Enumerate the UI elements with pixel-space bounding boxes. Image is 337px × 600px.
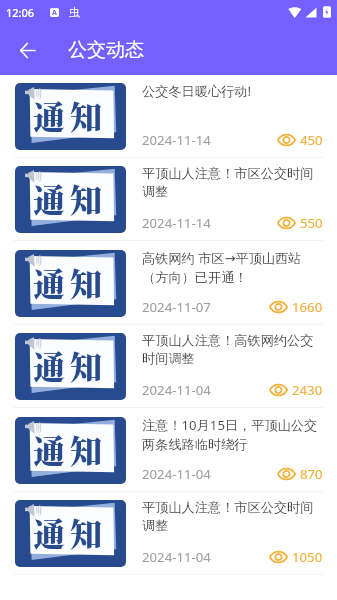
staticText: 870 bbox=[300, 465, 323, 483]
staticText: 公交冬日暖心行动! bbox=[142, 82, 323, 100]
button[interactable]: 通知 bbox=[0, 158, 337, 241]
staticText: 通知 bbox=[33, 175, 108, 221]
staticText: 通知 bbox=[33, 92, 108, 138]
staticText: 2024-11-04 bbox=[142, 465, 211, 483]
button[interactable]: 通知 bbox=[0, 492, 337, 575]
staticText: 2024-11-14 bbox=[142, 214, 211, 232]
button[interactable]: 通知 bbox=[0, 325, 337, 408]
staticText: 通知 bbox=[33, 426, 108, 472]
staticText: 虫 bbox=[69, 5, 80, 19]
staticText: 公交动态 bbox=[68, 38, 144, 62]
staticText: 2430 bbox=[292, 381, 323, 399]
button[interactable]: 通知 bbox=[0, 409, 337, 492]
button[interactable]: 通知 bbox=[0, 242, 337, 325]
staticText: 2024-11-04 bbox=[142, 548, 211, 566]
staticText: 平顶山人注意！市区公交时间调整 bbox=[142, 499, 323, 534]
staticText: 高铁网约 市区→平顶山西站（方向）已开通！ bbox=[142, 249, 323, 286]
staticText: 1660 bbox=[292, 298, 323, 316]
staticText: 2024-11-04 bbox=[142, 381, 211, 399]
button[interactable]: 通知 bbox=[0, 75, 337, 158]
staticText: 2024-11-07 bbox=[142, 298, 211, 316]
staticText: 通知 bbox=[33, 259, 108, 305]
staticText: 平顶山人注意！高铁网约公交时间调整 bbox=[142, 332, 323, 367]
staticText: A bbox=[52, 8, 57, 17]
staticText: 通知 bbox=[33, 342, 108, 388]
staticText: 注意！10月15日，平顶山公交两条线路临时绕行 bbox=[142, 416, 323, 453]
staticText: 2024-11-14 bbox=[142, 131, 211, 149]
staticText: 1050 bbox=[292, 548, 323, 566]
staticText: 平顶山人注意！市区公交时间调整 bbox=[142, 165, 323, 200]
staticText: 通知 bbox=[33, 509, 108, 555]
staticText: 12:06 bbox=[6, 5, 35, 20]
button[interactable]: Back bbox=[7, 30, 47, 70]
staticText: 550 bbox=[300, 214, 323, 232]
staticText: 450 bbox=[300, 131, 323, 149]
